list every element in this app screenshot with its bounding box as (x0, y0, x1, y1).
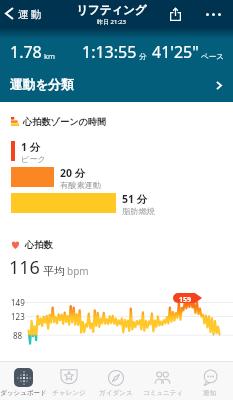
staticText: 有酸素運動 (60, 180, 101, 190)
staticText: bpm (67, 264, 89, 278)
staticText: 1:13:55 (82, 41, 137, 63)
staticText: リフティング (76, 3, 147, 17)
staticText: 123 (11, 311, 25, 322)
staticText: 159 (179, 295, 192, 305)
button[interactable]: More options (201, 2, 225, 26)
staticText: 平均 (43, 264, 65, 278)
staticText: 116 (9, 255, 40, 280)
staticText: 運動を分類 (10, 77, 74, 93)
button[interactable]: 運動 (1, 4, 46, 23)
button[interactable]: Share (163, 2, 187, 26)
staticText: 1.78 (10, 41, 42, 63)
staticText: 149 (11, 297, 25, 308)
staticText: 41'25" (152, 41, 199, 63)
staticText: 昨日 21:23 (97, 18, 126, 26)
button[interactable]: 運動を分類 (0, 72, 233, 98)
staticText: 心拍数ゾーンの時間 (23, 116, 107, 128)
staticText: km (44, 51, 56, 61)
staticText: 1 分 (21, 140, 41, 154)
staticText: 88 (13, 330, 23, 341)
staticText: 通知 (203, 389, 216, 397)
staticText: 心拍数 (25, 239, 53, 251)
button[interactable]: 通知 (186, 362, 233, 397)
staticText: 分 (139, 52, 147, 61)
staticText: ガイダンス (99, 389, 133, 397)
staticText: チャレンジ (52, 389, 86, 397)
staticText: ダッシュボード (0, 389, 46, 397)
staticText: 20 分 (60, 166, 86, 180)
button[interactable]: ダッシュボード (0, 362, 46, 397)
staticText: コミュニティ (143, 389, 183, 397)
button[interactable]: ガイダンス (92, 362, 139, 397)
staticText: ペース (201, 52, 224, 61)
staticText: 51 分 (122, 192, 148, 206)
button[interactable]: コミュニティ (139, 362, 186, 397)
button[interactable]: チャレンジ (46, 362, 92, 397)
staticText: 運動 (17, 8, 42, 21)
staticText: 脂肪燃焼 (122, 206, 155, 216)
staticText: ピーク (21, 154, 46, 164)
